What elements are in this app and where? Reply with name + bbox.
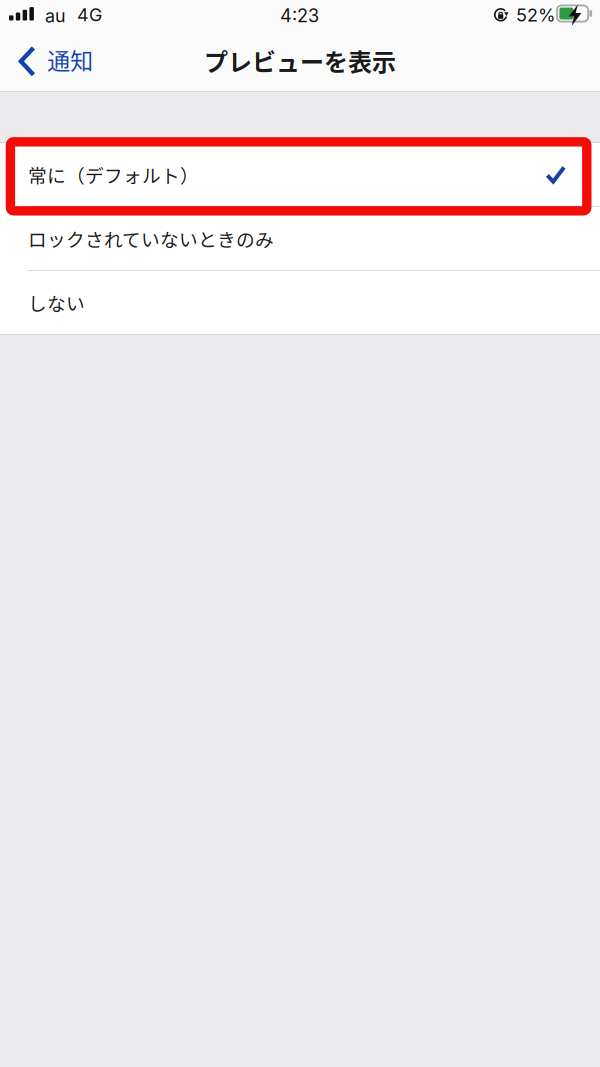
staticText: プレビューを表示 (204, 43, 396, 78)
button[interactable]: 常に（デフォルト） (0, 143, 600, 206)
staticText: 4G (77, 4, 102, 26)
staticText: 52% (516, 4, 556, 26)
button[interactable]: しない (0, 271, 600, 334)
button[interactable]: ロックされていないときのみ (0, 207, 600, 270)
staticText: 通知 (47, 43, 93, 76)
staticText: 4:23 (280, 5, 319, 26)
button[interactable]: 通知 (0, 35, 105, 84)
staticText: しない (28, 289, 85, 316)
staticText: au (45, 5, 66, 27)
staticText: ロックされていないときのみ (28, 225, 274, 252)
staticText: 常に（デフォルト） (28, 161, 199, 188)
